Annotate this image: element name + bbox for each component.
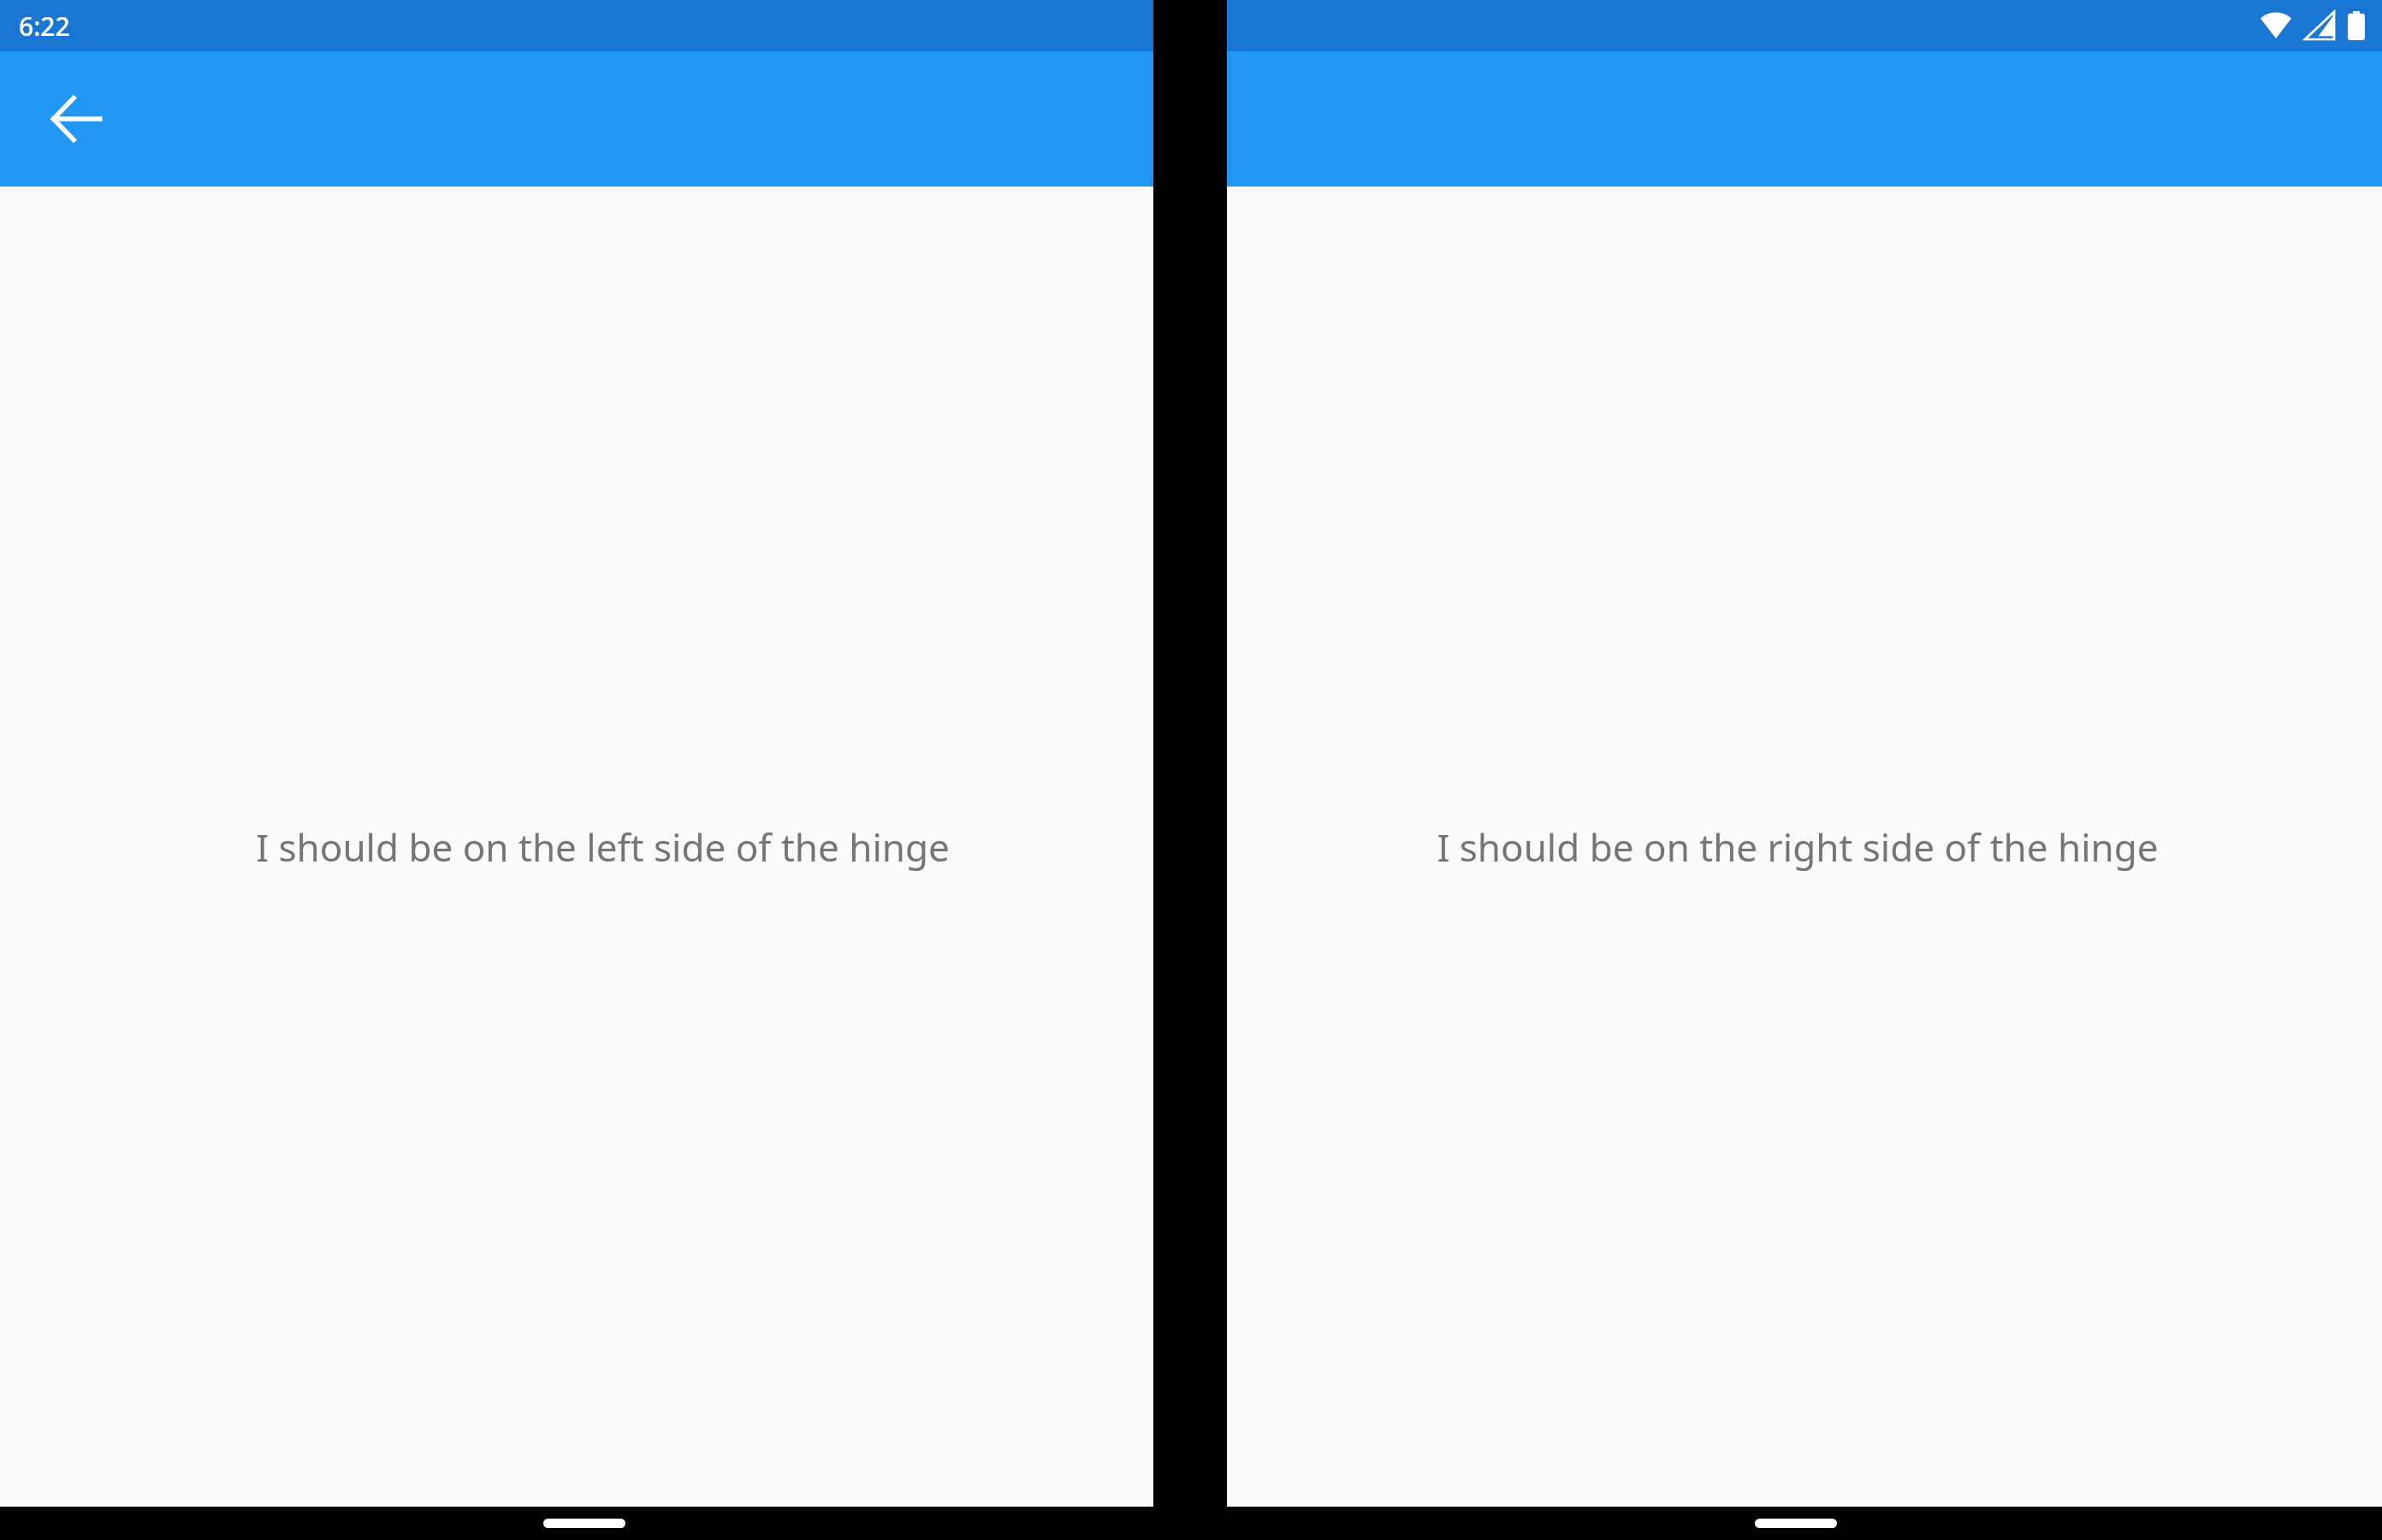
button[interactable]: Back (35, 78, 117, 160)
staticText: I should be on the left side of the hing… (256, 821, 950, 873)
staticText: I should be on the right side of the hin… (1437, 821, 2159, 873)
staticText: 6:22 (19, 9, 70, 44)
